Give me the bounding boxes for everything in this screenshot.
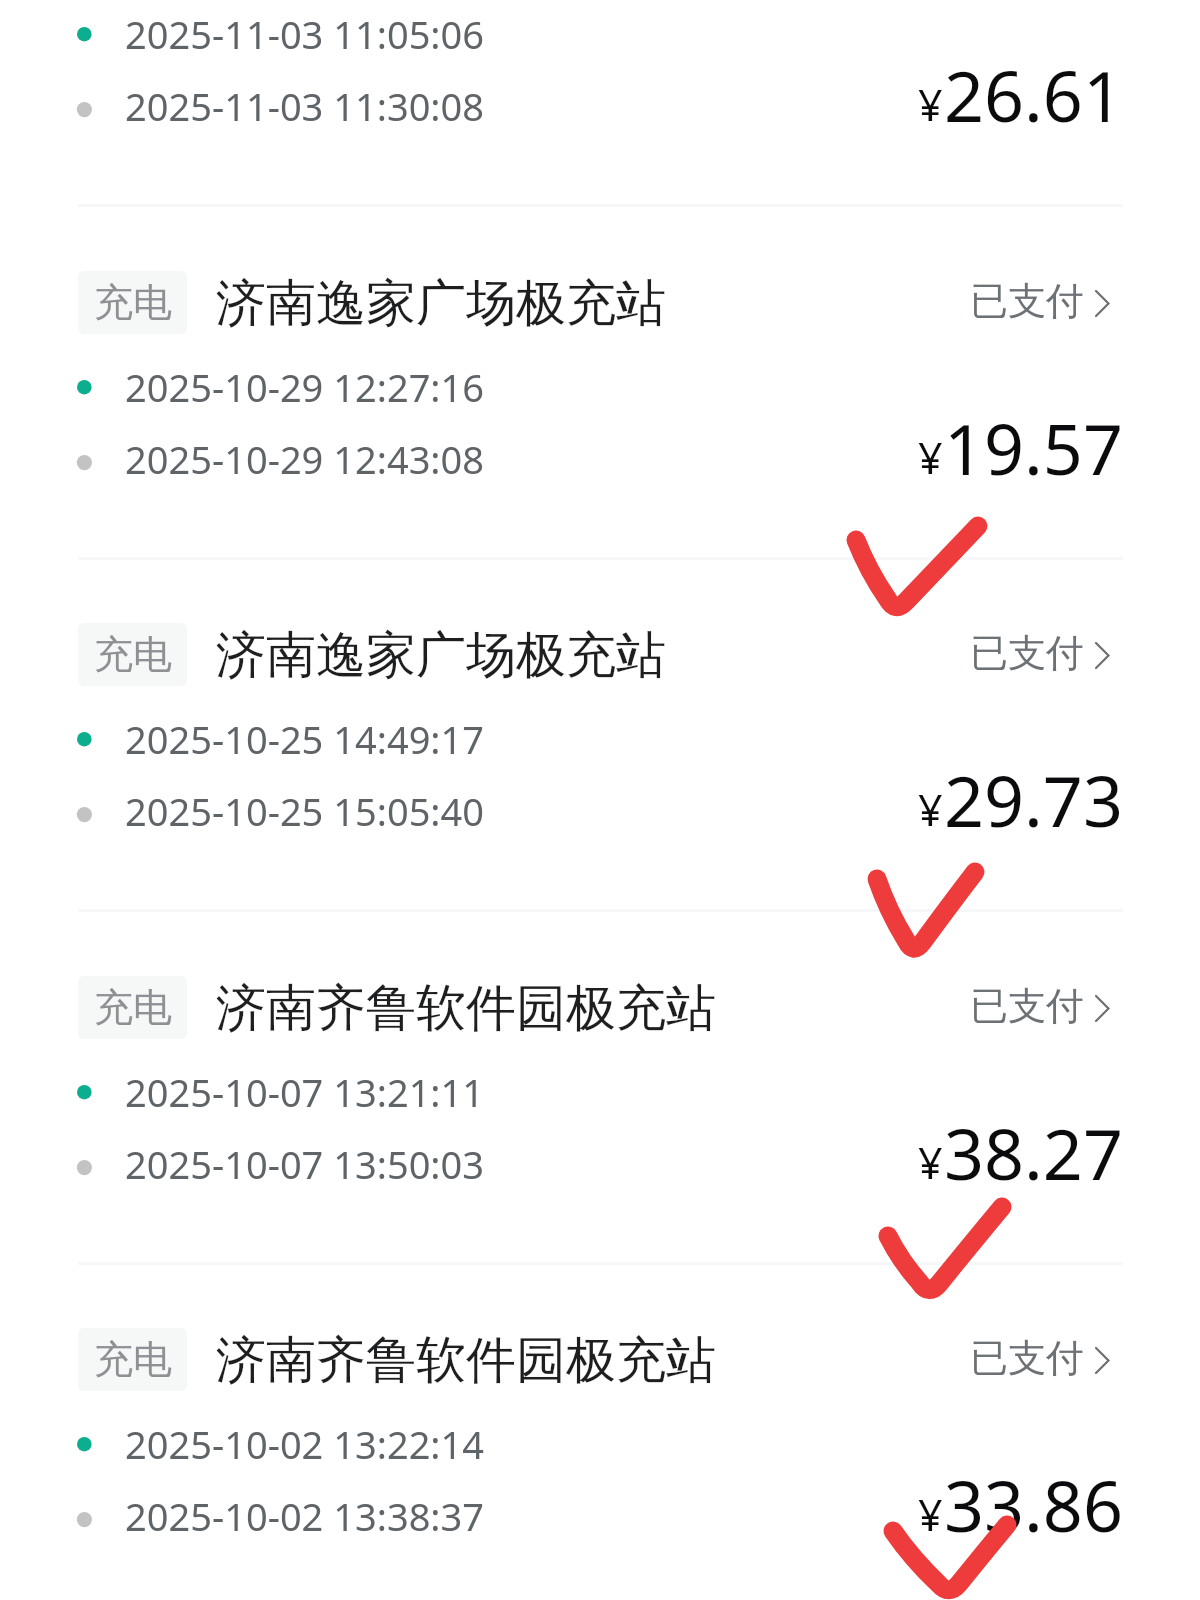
staticText: ¥ <box>918 1485 943 1544</box>
staticText: ¥ <box>918 428 943 487</box>
staticText: ¥ <box>918 75 943 134</box>
staticText: 充电 <box>94 278 172 327</box>
button[interactable]: 充电 <box>0 1262 1200 1600</box>
staticText: 2025-10-02 13:22:14 <box>125 1418 485 1470</box>
staticText: 2025-10-25 15:05:40 <box>125 785 485 837</box>
button[interactable]: 已支付 订单详情 <box>955 1324 1123 1394</box>
staticText: 33.86 <box>944 1457 1123 1552</box>
button[interactable]: 充电 <box>0 557 1200 910</box>
staticText: 济南逸家广场极充站 <box>216 624 666 687</box>
staticText: 济南齐鲁软件园极充站 <box>216 1329 716 1392</box>
staticText: 2025-11-03 11:30:08 <box>125 80 485 132</box>
button[interactable]: 充电 <box>0 910 1200 1263</box>
staticText: ¥ <box>918 1133 943 1192</box>
staticText: 已支付 <box>970 277 1084 325</box>
button[interactable]: 充电 <box>0 205 1200 558</box>
staticText: 19.57 <box>944 400 1123 495</box>
button[interactable]: 已支付 订单详情 <box>955 267 1123 337</box>
staticText: 济南齐鲁软件园极充站 <box>216 977 716 1040</box>
staticText: 已支付 <box>970 629 1084 677</box>
staticText: 2025-10-29 12:27:16 <box>125 361 485 413</box>
staticText: 2025-10-29 12:43:08 <box>125 433 485 485</box>
staticText: 2025-10-07 13:21:11 <box>125 1066 485 1118</box>
staticText: 29.73 <box>944 752 1123 847</box>
button[interactable]: 充电 <box>0 0 1200 205</box>
staticText: 2025-10-02 13:38:37 <box>125 1490 485 1542</box>
staticText: 已支付 <box>970 982 1084 1030</box>
staticText: ¥ <box>918 780 943 839</box>
staticText: 2025-10-25 14:49:17 <box>125 713 485 765</box>
staticText: 充电 <box>94 983 172 1032</box>
staticText: 2025-11-03 11:05:06 <box>125 8 485 60</box>
staticText: 38.27 <box>944 1105 1123 1200</box>
staticText: 济南逸家广场极充站 <box>216 272 666 335</box>
staticText: 26.61 <box>944 47 1123 142</box>
staticText: 充电 <box>94 630 172 679</box>
staticText: 2025-10-07 13:50:03 <box>125 1138 485 1190</box>
button[interactable]: 已支付 订单详情 <box>955 619 1123 689</box>
staticText: 已支付 <box>970 1334 1084 1382</box>
button[interactable]: 已支付 订单详情 <box>955 972 1123 1042</box>
staticText: 充电 <box>94 1335 172 1384</box>
